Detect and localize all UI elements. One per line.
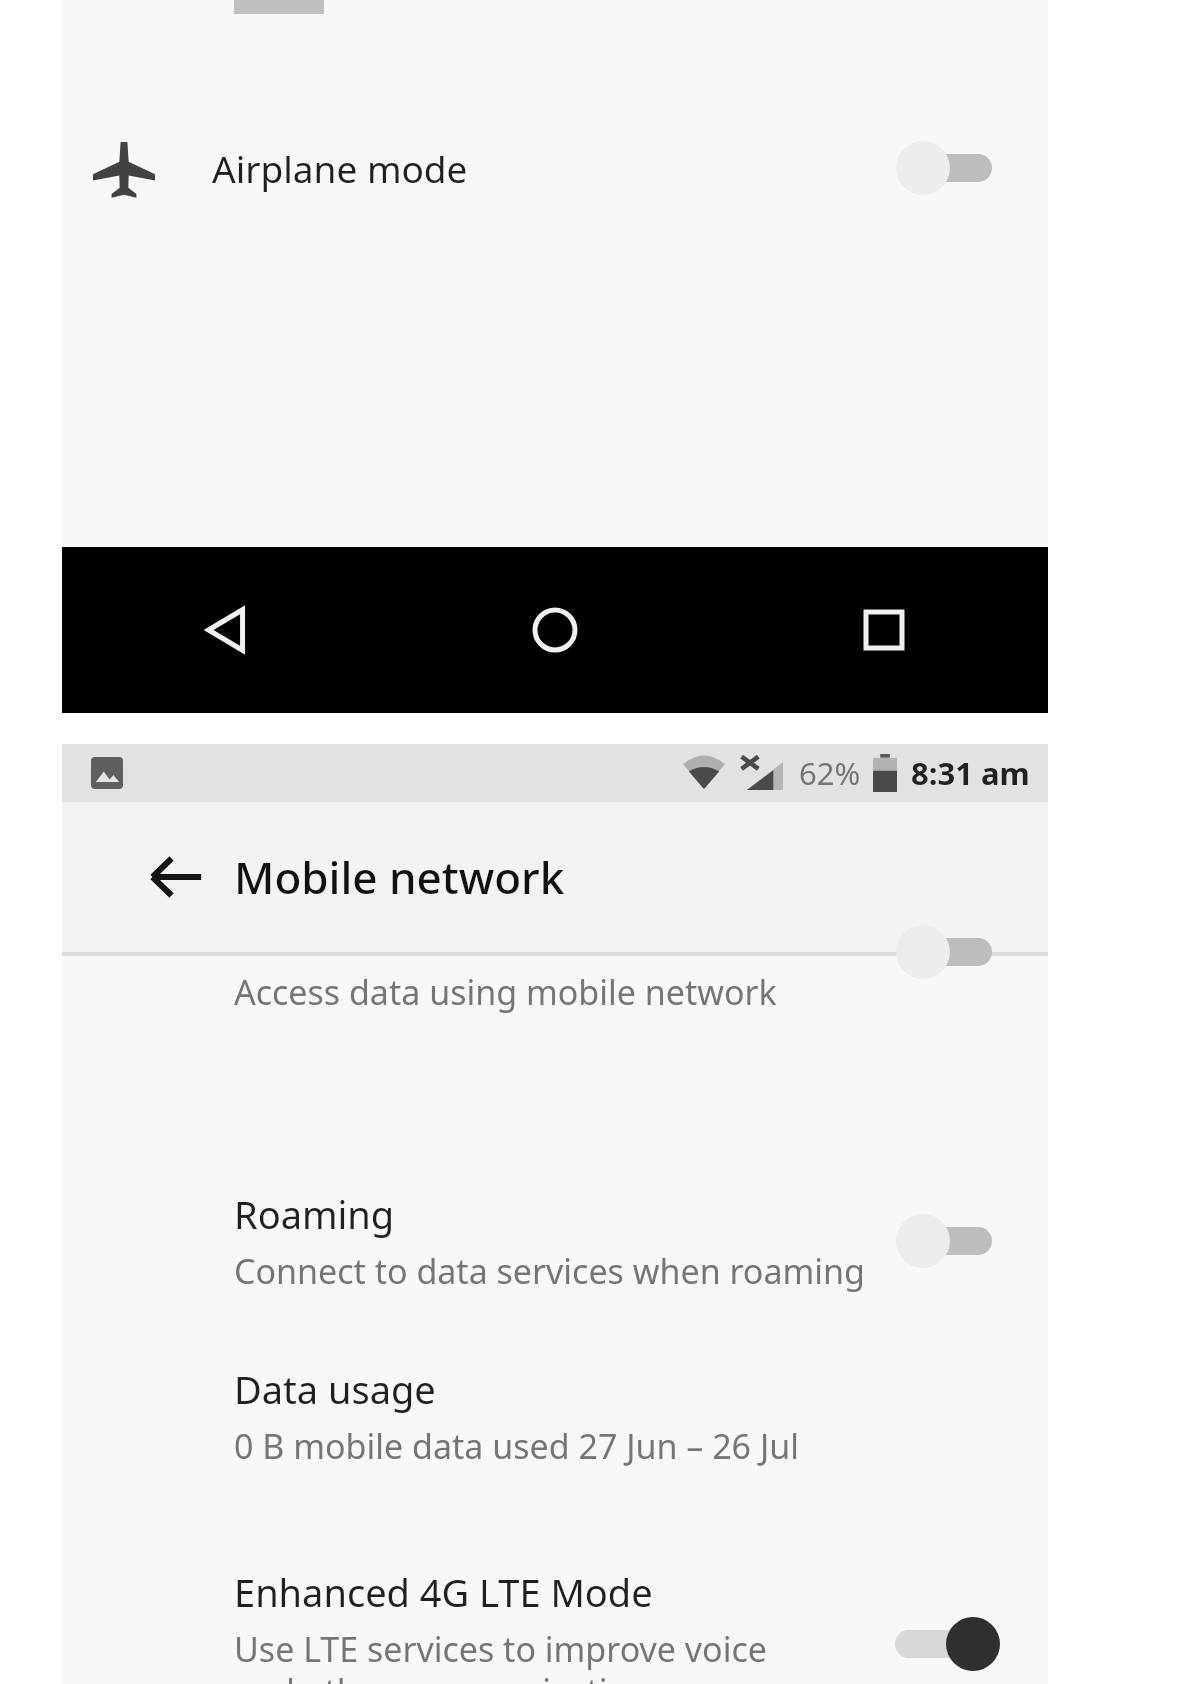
staticText: Mobile network [234, 847, 565, 907]
button[interactable]: Back [62, 547, 390, 713]
button[interactable]: Toggle off [896, 1213, 992, 1269]
staticText: Use LTE services to improve voice and ot… [234, 1626, 788, 1684]
staticText: Connect to data services when roaming [234, 1248, 865, 1294]
staticText: Data usage [234, 1363, 436, 1415]
button[interactable]: Toggle off [896, 140, 992, 196]
staticText: Access data using mobile network [234, 969, 777, 1015]
staticText: Airplane mode [212, 143, 468, 193]
other: Airplane mode [92, 136, 156, 200]
button[interactable]: Roaming [62, 1166, 1048, 1316]
button[interactable]: Recent apps [719, 547, 1048, 713]
button[interactable]: Enhanced 4G LTE Mode [62, 1516, 1048, 1684]
button[interactable]: Back [140, 841, 212, 913]
button[interactable]: Data usage [62, 1341, 1048, 1491]
button[interactable]: Toggle off [896, 924, 992, 980]
staticText: 62% [799, 752, 861, 794]
button[interactable]: Home [390, 547, 719, 713]
staticText: 8:31 am [911, 752, 1030, 794]
staticText: 0 B mobile data used 27 Jun – 26 Jul [234, 1423, 799, 1469]
button[interactable]: Airplane mode [62, 98, 1048, 238]
staticText: Roaming [234, 1188, 395, 1240]
button[interactable]: Toggle on [890, 1616, 1000, 1672]
staticText: Enhanced 4G LTE Mode [234, 1566, 653, 1618]
button[interactable]: Access data using mobile network [62, 956, 1048, 1028]
